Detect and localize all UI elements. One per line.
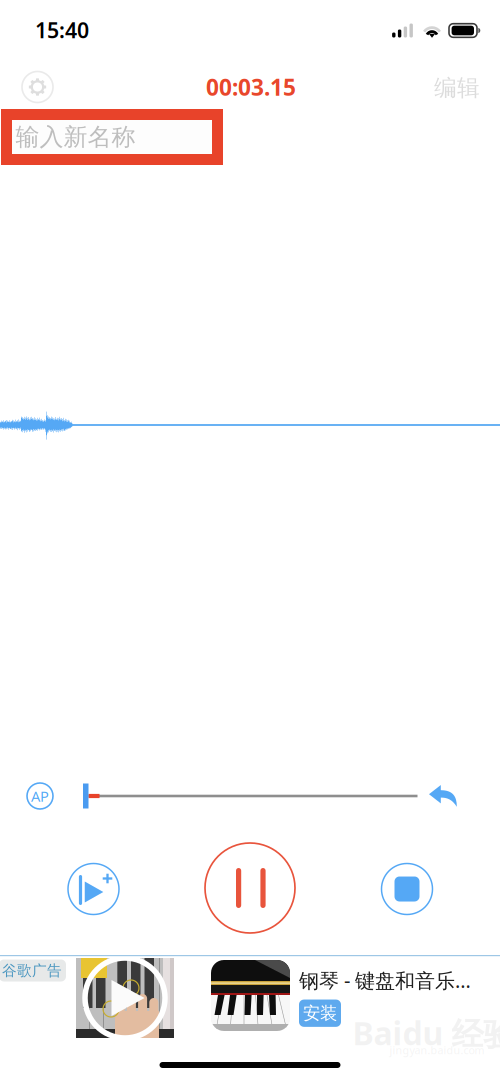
button[interactable]: 编辑 xyxy=(424,64,490,112)
staticText: Baidu 经验 xyxy=(352,1012,500,1054)
button[interactable]: Playback position xyxy=(83,781,423,811)
button[interactable]: Undo xyxy=(421,777,465,815)
button[interactable]: Pause recording xyxy=(203,841,297,935)
button[interactable]: Stop recording xyxy=(379,861,435,917)
button[interactable]: 输入新名称 xyxy=(6,114,217,159)
staticText: 安装 xyxy=(303,1003,337,1024)
staticText: jingyan.baidu.com xyxy=(389,1043,484,1057)
staticText: AP xyxy=(31,786,49,806)
button[interactable]: 钢琴 app icon xyxy=(211,960,290,1031)
staticText: 谷歌广告 xyxy=(2,961,62,979)
button[interactable]: 钢琴 - 键盘和音乐… xyxy=(299,967,471,1027)
staticText: 00:03.15 xyxy=(206,72,296,102)
staticText: 输入新名称 xyxy=(15,122,135,152)
staticText: 钢琴 - 键盘和音乐… xyxy=(299,967,471,994)
button[interactable]: Settings xyxy=(15,65,59,109)
staticText: 15:40 xyxy=(35,16,89,44)
button[interactable]: AP xyxy=(20,776,60,816)
staticText: 编辑 xyxy=(434,74,480,102)
button[interactable]: Play ad video xyxy=(76,958,174,1038)
button[interactable]: Add marker xyxy=(65,861,121,917)
